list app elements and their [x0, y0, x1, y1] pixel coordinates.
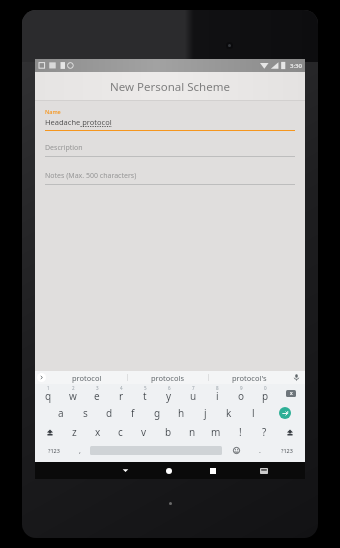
button[interactable]: m — [204, 422, 228, 441]
staticText: c — [118, 425, 123, 439]
staticText: j — [204, 406, 207, 420]
staticText: q — [45, 389, 52, 403]
button[interactable]: 1 — [36, 384, 61, 403]
staticText: b — [165, 425, 172, 439]
button[interactable]: 8 — [205, 384, 229, 403]
staticText: 3 — [96, 385, 99, 391]
button[interactable]: ! — [228, 422, 252, 441]
button[interactable]: b — [156, 422, 180, 441]
button[interactable]: ?123 — [270, 441, 303, 460]
staticText: protocols — [151, 373, 185, 383]
button[interactable]: 9 — [229, 384, 253, 403]
staticText: p — [262, 389, 269, 403]
button[interactable]: protocol's — [209, 371, 289, 384]
button[interactable]: s — [73, 403, 97, 422]
staticText: 8 — [216, 385, 219, 391]
staticText: v — [141, 425, 147, 439]
button[interactable]: Emoji — [222, 441, 250, 460]
staticText: . — [259, 446, 261, 456]
button[interactable]: Backspace — [277, 384, 304, 403]
button[interactable]: 4 — [109, 384, 133, 403]
button[interactable]: Shift — [276, 422, 304, 441]
staticText: n — [189, 425, 196, 439]
staticText: f — [131, 406, 135, 420]
button[interactable]: protocols — [128, 371, 208, 384]
button[interactable]: 0 — [253, 384, 277, 403]
button[interactable]: Shift — [36, 422, 63, 441]
button[interactable]: Home — [147, 462, 191, 479]
button[interactable]: c — [109, 422, 132, 441]
staticText: t — [143, 389, 147, 403]
staticText: z — [72, 425, 77, 439]
staticText: , — [79, 446, 81, 456]
staticText: r — [119, 389, 124, 403]
staticText: protocol — [72, 373, 102, 383]
button[interactable]: l — [241, 403, 265, 422]
staticText: 5 — [144, 385, 147, 391]
button[interactable]: k — [217, 403, 241, 422]
staticText: 1 — [47, 385, 50, 391]
staticText: e — [94, 389, 100, 403]
button[interactable]: f — [121, 403, 145, 422]
button[interactable]: . — [250, 441, 270, 460]
button[interactable]: x — [86, 422, 109, 441]
staticText: ?123 — [281, 447, 293, 454]
button[interactable]: 5 — [133, 384, 157, 403]
staticText: y — [166, 389, 172, 403]
staticText: l — [252, 406, 255, 420]
button[interactable]: 2 — [61, 384, 85, 403]
button[interactable]: ? — [252, 422, 276, 441]
staticText: 0 — [264, 385, 267, 391]
button[interactable]: Switch keyboard — [235, 462, 292, 479]
staticText: ?123 — [48, 447, 60, 454]
button[interactable]: j — [193, 403, 217, 422]
button[interactable]: Voice input — [289, 371, 303, 384]
staticText: x — [290, 390, 293, 397]
staticText: Name — [45, 108, 61, 115]
button[interactable]: v — [132, 422, 156, 441]
staticText: Headache protocol — [45, 117, 112, 127]
staticText: 2 — [72, 385, 75, 391]
staticText: u — [190, 389, 197, 403]
staticText: a — [58, 406, 64, 420]
staticText: ! — [239, 425, 242, 439]
button[interactable]: 7 — [181, 384, 205, 403]
staticText: h — [178, 406, 185, 420]
staticText: x — [95, 425, 101, 439]
button[interactable]: z — [63, 422, 86, 441]
button[interactable]: ?123 — [37, 441, 70, 460]
button[interactable]: n — [180, 422, 204, 441]
button[interactable]: a — [49, 403, 73, 422]
button[interactable]: h — [169, 403, 193, 422]
staticText: s — [83, 406, 88, 420]
staticText: 3:30 — [290, 62, 302, 70]
button[interactable]: 6 — [157, 384, 181, 403]
button[interactable]: protocol — [46, 371, 127, 384]
staticText: 9 — [240, 385, 243, 391]
button[interactable]: Hide keyboard — [104, 462, 147, 479]
staticText: 7 — [192, 385, 195, 391]
staticText: m — [211, 425, 221, 439]
staticText: w — [69, 389, 77, 403]
staticText: 4 — [120, 385, 123, 391]
button[interactable]: Recents — [191, 462, 235, 479]
button[interactable]: g — [145, 403, 169, 422]
button[interactable]: Headache protocol — [45, 117, 295, 131]
staticText: i — [216, 389, 219, 403]
staticText: o — [238, 389, 245, 403]
staticText: New Personal Scheme — [110, 79, 230, 95]
button[interactable]: Enter — [265, 403, 304, 422]
staticText: ? — [262, 425, 267, 439]
staticText: Notes (Max. 500 characters) — [45, 171, 137, 181]
button[interactable]: Description — [45, 143, 295, 157]
button[interactable]: Notes (Max. 500 characters) — [45, 171, 295, 185]
button[interactable]: , — [70, 441, 90, 460]
button[interactable]: 3 — [85, 384, 109, 403]
staticText: Description — [45, 143, 83, 153]
button[interactable]: d — [97, 403, 121, 422]
staticText: g — [154, 406, 161, 420]
staticText: d — [106, 406, 113, 420]
staticText: k — [226, 406, 232, 420]
button[interactable]: More suggestions — [37, 373, 46, 382]
